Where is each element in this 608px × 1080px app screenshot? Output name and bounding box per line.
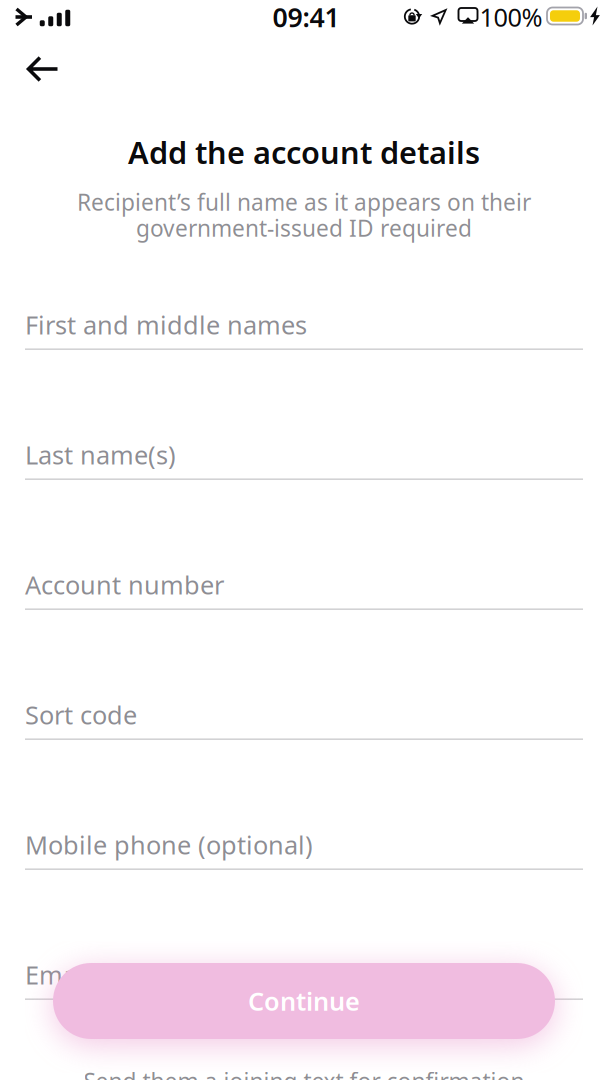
staticText: Recipient’s full name as it appears on t… <box>77 187 531 217</box>
staticText: Mobile phone (optional) <box>25 828 313 861</box>
staticText: Last name(s) <box>25 438 176 471</box>
staticText: government-issued ID required <box>136 213 472 243</box>
button[interactable]: Last name(s) <box>25 350 583 480</box>
button[interactable]: Account number <box>25 480 583 610</box>
staticText: 09:41 <box>272 0 339 35</box>
staticText: Sort code <box>25 698 137 731</box>
button[interactable]: Email address <box>25 870 583 1000</box>
button[interactable]: First and middle names <box>25 220 583 350</box>
staticText: 100% <box>479 0 542 34</box>
staticText: Add the account details <box>128 132 480 172</box>
staticText: First and middle names <box>25 308 307 341</box>
button[interactable]: Continue <box>53 963 555 1039</box>
staticText: Account number <box>25 568 224 601</box>
staticText: Send them a joining text for confirmatio… <box>83 1066 524 1080</box>
button[interactable]: Sort code <box>25 610 583 740</box>
button[interactable]: Back <box>1 38 85 100</box>
staticText: Continue <box>248 984 360 1018</box>
staticText: Email address <box>25 958 192 991</box>
button[interactable]: Mobile phone (optional) <box>25 740 583 870</box>
